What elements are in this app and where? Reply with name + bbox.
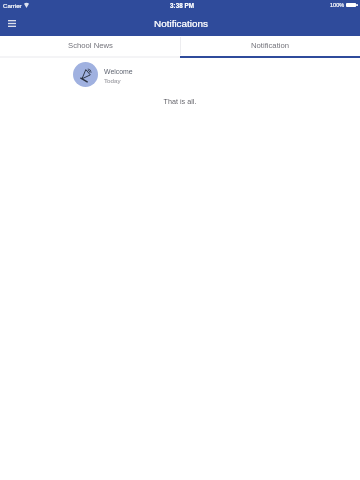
- button[interactable]: Welcome: [0, 59, 360, 89]
- button[interactable]: Open navigation menu: [0, 12, 24, 34]
- staticText: Welcome: [104, 68, 133, 76]
- staticText: Today: [104, 77, 121, 84]
- staticText: 3:38 PM: [2, 2, 360, 9]
- staticText: Notification: [251, 41, 290, 50]
- staticText: 100%: [330, 2, 345, 8]
- button[interactable]: Notification: [180, 36, 360, 58]
- button[interactable]: School News: [0, 36, 180, 58]
- staticText: Notifications: [1, 18, 360, 29]
- staticText: School News: [68, 41, 113, 50]
- staticText: That is all.: [0, 97, 360, 105]
- staticText: Carrier: [3, 2, 22, 9]
